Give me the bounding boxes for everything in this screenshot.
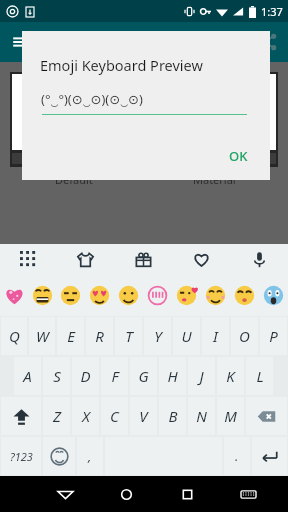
button[interactable]: Shift bbox=[1, 397, 41, 435]
button[interactable]: Back bbox=[35, 476, 96, 512]
staticText: F bbox=[111, 366, 119, 386]
button[interactable]: Favorites bbox=[172, 244, 230, 274]
button[interactable]: M bbox=[217, 397, 244, 435]
staticText: Y bbox=[154, 326, 162, 346]
button[interactable]: Z bbox=[43, 397, 70, 435]
button[interactable]: R bbox=[86, 317, 113, 355]
button[interactable]: Emoji keyboard bbox=[43, 437, 75, 475]
button[interactable]: O bbox=[231, 317, 258, 355]
staticText: I bbox=[213, 326, 218, 346]
button[interactable]: C bbox=[101, 397, 128, 435]
staticText: Z bbox=[53, 406, 61, 426]
button[interactable]: Y bbox=[144, 317, 171, 355]
button[interactable]: P bbox=[260, 317, 287, 355]
staticText: V bbox=[139, 406, 148, 426]
button[interactable]: Emoji bbox=[201, 274, 230, 316]
staticText: OK bbox=[229, 147, 248, 165]
staticText: . bbox=[235, 447, 239, 465]
button[interactable]: U bbox=[173, 317, 200, 355]
button[interactable]: . bbox=[224, 437, 250, 475]
staticText: (°‿°)(⊙‿⊙)(⊙‿⊙) bbox=[41, 90, 143, 108]
staticText: X bbox=[82, 406, 90, 426]
button[interactable]: G bbox=[130, 357, 157, 395]
staticText: U bbox=[181, 326, 192, 346]
staticText: B bbox=[168, 406, 178, 426]
button[interactable]: I bbox=[202, 317, 229, 355]
button[interactable]: J bbox=[188, 357, 215, 395]
button[interactable]: Navigation menu bbox=[8, 29, 34, 55]
button[interactable]: Emoji bbox=[230, 274, 259, 316]
button[interactable]: Emoji bbox=[0, 274, 28, 316]
button[interactable]: ?123 bbox=[1, 437, 41, 475]
button[interactable]: Emoji bbox=[143, 274, 172, 316]
staticText: C bbox=[110, 406, 119, 426]
button[interactable]: Enter bbox=[252, 437, 287, 475]
staticText: L bbox=[256, 366, 264, 386]
staticText: O bbox=[239, 326, 250, 346]
staticText: P bbox=[269, 326, 278, 346]
staticText: G bbox=[138, 366, 149, 386]
button[interactable] bbox=[152, 74, 276, 165]
button[interactable]: K bbox=[217, 357, 244, 395]
staticText: J bbox=[199, 366, 204, 386]
button[interactable]: V bbox=[130, 397, 157, 435]
staticText: H bbox=[167, 366, 178, 386]
button[interactable]: Emoji bbox=[172, 274, 201, 316]
button[interactable]: Backspace bbox=[246, 397, 287, 435]
staticText: Emoji Keyboard Preview bbox=[40, 55, 203, 75]
staticText: ?123 bbox=[10, 449, 33, 464]
button[interactable]: , bbox=[77, 437, 103, 475]
staticText: R bbox=[95, 326, 104, 346]
button[interactable]: F bbox=[101, 357, 128, 395]
button[interactable]: B bbox=[159, 397, 186, 435]
button[interactable]: Voice input bbox=[230, 244, 288, 274]
staticText: K bbox=[226, 366, 235, 386]
button[interactable]: A bbox=[14, 357, 41, 395]
button[interactable]: S bbox=[43, 357, 70, 395]
staticText: M bbox=[224, 406, 237, 426]
button[interactable] bbox=[12, 74, 136, 165]
staticText: S bbox=[53, 366, 61, 386]
button[interactable]: Emoji bbox=[114, 274, 143, 316]
button[interactable]: OK bbox=[221, 142, 256, 170]
button[interactable]: Q bbox=[1, 317, 27, 355]
staticText: W bbox=[36, 326, 49, 346]
button[interactable]: X bbox=[72, 397, 99, 435]
button[interactable]: Emoji bbox=[56, 274, 85, 316]
button[interactable]: D bbox=[72, 357, 99, 395]
button[interactable]: Switch keyboard bbox=[218, 476, 279, 512]
staticText: E bbox=[67, 326, 75, 346]
staticText: A bbox=[23, 366, 32, 386]
staticText: Default bbox=[55, 172, 93, 187]
button[interactable]: W bbox=[29, 317, 55, 355]
button[interactable]: L bbox=[246, 357, 273, 395]
button[interactable]: Clothing bbox=[57, 244, 114, 274]
button[interactable]: Emoji bbox=[28, 274, 56, 316]
button[interactable]: Categories bbox=[0, 244, 57, 274]
button[interactable]: Emoji bbox=[259, 274, 288, 316]
staticText: , bbox=[88, 447, 92, 465]
staticText: N bbox=[196, 406, 207, 426]
button[interactable]: H bbox=[159, 357, 186, 395]
button[interactable]: Recents bbox=[157, 476, 218, 512]
button[interactable]: Home bbox=[96, 476, 157, 512]
staticText: D bbox=[80, 366, 91, 386]
button[interactable]: E bbox=[57, 317, 84, 355]
button[interactable]: N bbox=[188, 397, 215, 435]
button[interactable]: Emoji bbox=[85, 274, 114, 316]
staticText: 1:37 bbox=[261, 4, 283, 19]
staticText: Material bbox=[193, 172, 236, 187]
button[interactable]: T bbox=[115, 317, 142, 355]
staticText: Q bbox=[9, 326, 20, 346]
staticText: T bbox=[125, 326, 133, 346]
button[interactable]: Gifts bbox=[114, 244, 172, 274]
button[interactable]: Share bbox=[256, 29, 282, 55]
